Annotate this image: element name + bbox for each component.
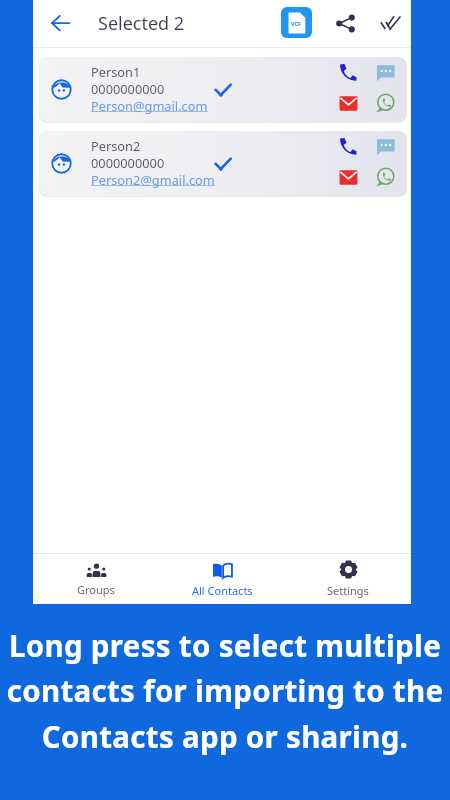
staticText: Person1 bbox=[91, 63, 141, 80]
button[interactable]: Email bbox=[338, 93, 358, 113]
staticText: 0000000000 bbox=[91, 80, 165, 97]
button[interactable]: Share bbox=[329, 7, 361, 39]
button[interactable]: WhatsApp bbox=[375, 93, 395, 113]
button[interactable]: Call bbox=[338, 136, 358, 156]
staticText: Long press to select multiple contacts f… bbox=[3, 625, 447, 757]
button[interactable]: Settings bbox=[285, 560, 411, 598]
staticText: Settings bbox=[327, 583, 369, 598]
staticText: Person2 bbox=[91, 137, 141, 154]
staticText: Groups bbox=[77, 582, 115, 597]
button[interactable]: Call bbox=[338, 62, 358, 82]
staticText: VCF bbox=[291, 20, 302, 27]
button[interactable]: Message bbox=[375, 136, 395, 156]
button[interactable]: WhatsApp bbox=[375, 167, 395, 187]
button[interactable]: Export VCF bbox=[281, 7, 312, 38]
button[interactable]: Email bbox=[338, 167, 358, 187]
staticText: Selected 2 bbox=[98, 11, 185, 36]
staticText: All Contacts bbox=[192, 583, 253, 598]
staticText: Person2@gmail.com bbox=[91, 171, 215, 188]
staticText: Person@gmail.com bbox=[91, 97, 208, 114]
button[interactable]: Message bbox=[375, 62, 395, 82]
staticText: 0000000000 bbox=[91, 154, 165, 171]
button[interactable]: Person1 bbox=[39, 57, 406, 122]
button[interactable]: All Contacts bbox=[159, 561, 285, 598]
button[interactable]: Person2 bbox=[39, 131, 406, 196]
button[interactable]: Select all bbox=[375, 7, 407, 39]
button[interactable]: Groups bbox=[33, 562, 159, 597]
button[interactable]: Back bbox=[44, 7, 77, 40]
